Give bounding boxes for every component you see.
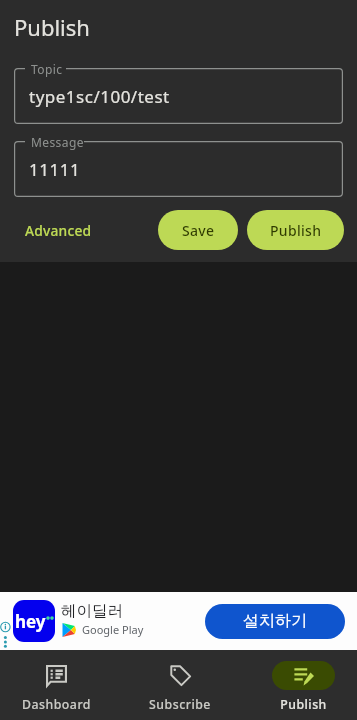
button[interactable]: Subscribe [118,650,242,720]
button[interactable]: Save [158,210,238,250]
staticText: Google Play [82,622,144,637]
button[interactable]: Dashboard [0,650,118,720]
staticText: Message [31,134,84,150]
staticText: Publish [14,12,90,42]
staticText: Save [182,221,215,240]
staticText: Publish [270,221,322,240]
staticText: hey [15,610,46,633]
staticText: 헤이딜러 [61,601,123,621]
staticText: 11111 [29,158,81,181]
button[interactable]: Publish [247,210,344,250]
staticText: 설치하기 [243,611,307,631]
staticText: Topic [31,61,63,77]
other: Subscribe [169,664,192,687]
staticText: type1sc/100/test [29,85,170,108]
other: Publish [294,666,314,686]
button[interactable]: Publish [241,650,357,720]
staticText: Subscribe [149,696,211,713]
button[interactable]: Advanced [13,213,104,248]
button[interactable]: 설치하기 [205,604,345,639]
other: Dashboard [46,665,67,686]
button[interactable]: Topic [14,68,343,124]
staticText: Publish [280,696,327,713]
staticText: Advanced [25,221,92,240]
button[interactable]: Message [14,141,343,197]
staticText: Dashboard [22,696,91,713]
